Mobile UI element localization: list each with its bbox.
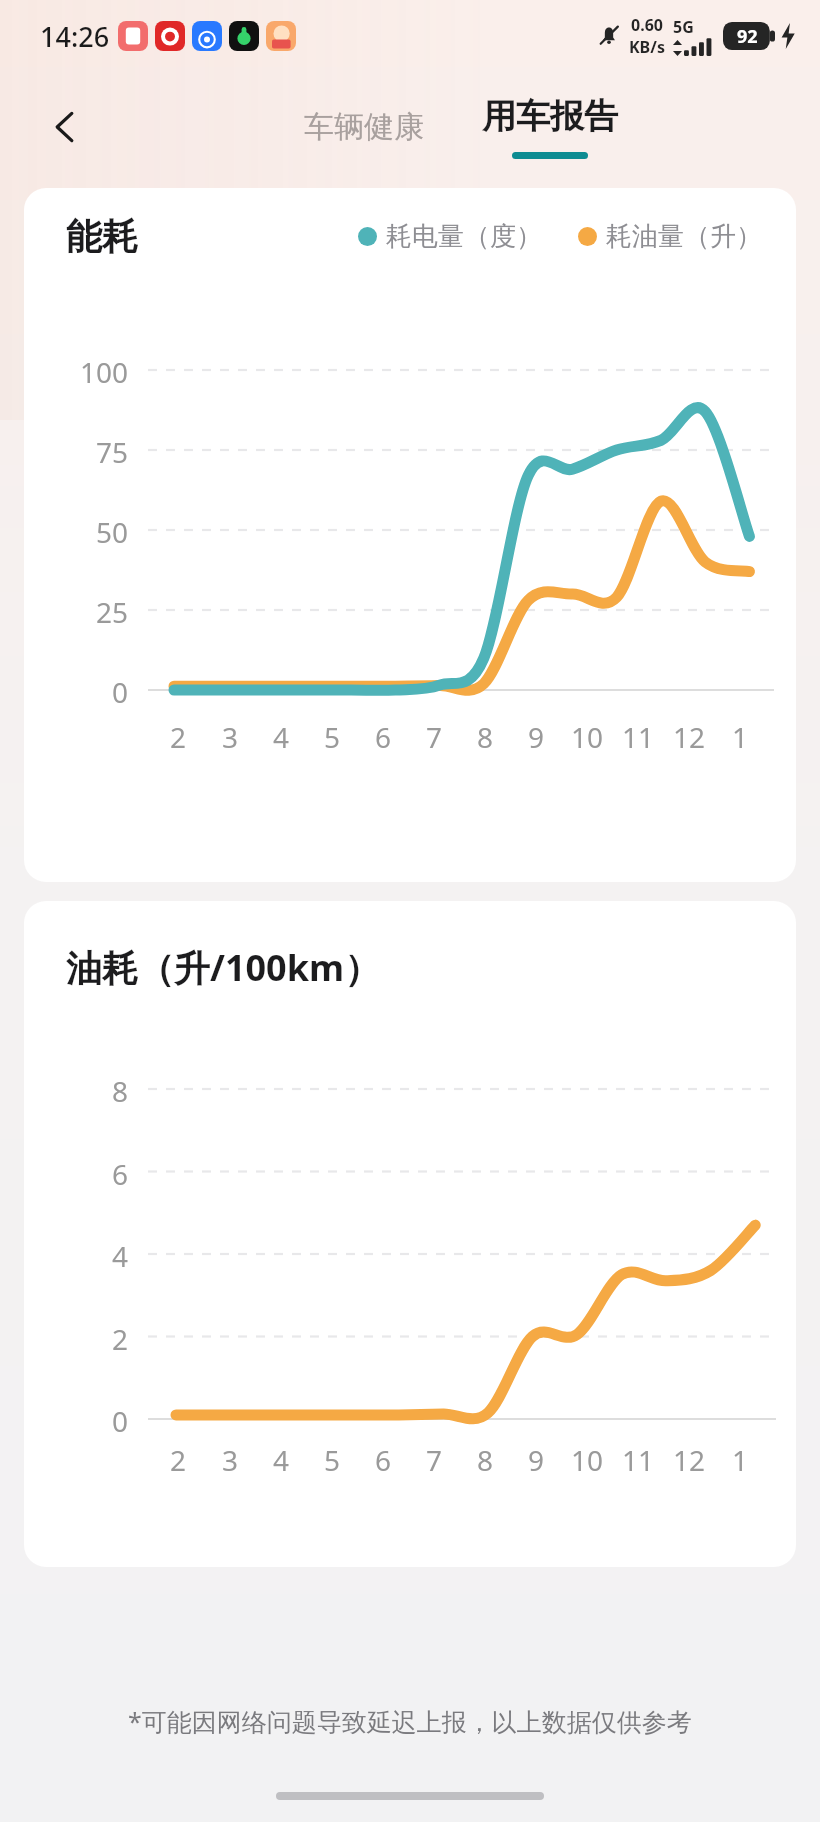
staticText: 8 — [24, 1072, 128, 1110]
staticText: 14:26 — [40, 18, 110, 55]
staticText: 1 — [732, 718, 749, 756]
button[interactable]: 用车报告 — [472, 95, 628, 159]
staticText: 75 — [24, 433, 128, 471]
staticText: *可能因网络问题导致延迟上报，以上数据仅供参考 — [128, 1704, 692, 1738]
staticText: 92 — [737, 24, 758, 49]
staticText: 12 — [673, 1441, 706, 1479]
staticText: 2 — [170, 718, 187, 756]
staticText: 7 — [426, 718, 443, 756]
staticText: 耗油量（升） — [606, 220, 762, 253]
staticText: 5 — [324, 718, 341, 756]
staticText: 9 — [528, 718, 545, 756]
staticText: 1 — [732, 1441, 749, 1479]
staticText: 11 — [622, 718, 655, 756]
staticText: 25 — [24, 593, 128, 631]
staticText: 车辆健康 — [304, 108, 424, 146]
staticText: 12 — [673, 718, 706, 756]
staticText: 6 — [24, 1155, 128, 1193]
staticText: 6 — [375, 718, 392, 756]
staticText: 50 — [24, 513, 128, 551]
staticText: 4 — [273, 718, 290, 756]
staticText: 10 — [571, 1441, 604, 1479]
staticText: 能耗 — [66, 214, 138, 259]
staticText: 耗电量（度） — [386, 220, 542, 253]
staticText: 3 — [222, 1441, 239, 1479]
staticText: 0 — [24, 1402, 128, 1440]
staticText: 9 — [528, 1441, 545, 1479]
staticText: 5 — [324, 1441, 341, 1479]
staticText: 4 — [24, 1237, 128, 1275]
staticText: 0.60 — [631, 14, 663, 36]
button[interactable]: 车辆健康 — [292, 100, 436, 154]
staticText: 7 — [426, 1441, 443, 1479]
staticText: 3 — [222, 718, 239, 756]
staticText: 100 — [24, 353, 128, 391]
staticText: 10 — [571, 718, 604, 756]
staticText: KB/s — [629, 36, 665, 58]
staticText: 2 — [170, 1441, 187, 1479]
staticText: 用车报告 — [482, 95, 618, 138]
button[interactable]: 油耗（升/100km） — [24, 901, 796, 1567]
button[interactable]: 能耗 — [24, 188, 796, 882]
staticText: 8 — [477, 1441, 494, 1479]
staticText: 11 — [622, 1441, 655, 1479]
staticText: 4 — [273, 1441, 290, 1479]
staticText: 油耗（升/100km） — [66, 943, 381, 992]
staticText: 0 — [24, 673, 128, 711]
staticText: 6 — [375, 1441, 392, 1479]
staticText: 2 — [24, 1320, 128, 1358]
button[interactable]: Back — [34, 96, 96, 158]
staticText: 8 — [477, 718, 494, 756]
staticText: 5G — [673, 16, 694, 38]
